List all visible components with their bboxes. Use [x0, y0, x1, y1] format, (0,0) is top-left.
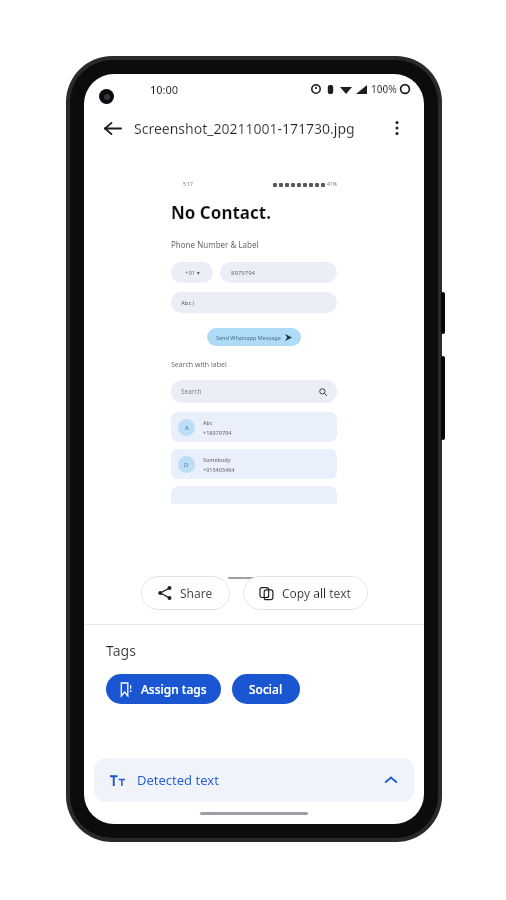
staticText: A	[185, 424, 189, 432]
staticText: Copy all text	[282, 585, 351, 601]
staticText: Abc	[203, 419, 213, 426]
staticText: 100%	[371, 82, 397, 96]
staticText: 41%	[327, 181, 337, 188]
button[interactable]: D	[171, 449, 337, 479]
button[interactable]: Detected text	[94, 758, 414, 802]
staticText: 10:00	[150, 82, 179, 97]
staticText: Abc|	[181, 299, 195, 307]
staticText: Tags	[106, 641, 136, 660]
staticText: +915405464	[203, 466, 235, 473]
staticText: Somebody	[203, 456, 231, 463]
button[interactable]: 8979794	[220, 262, 337, 283]
button[interactable]: Abc|	[171, 292, 337, 313]
button[interactable]: Search	[171, 380, 337, 403]
staticText: Search	[181, 387, 202, 396]
staticText: Phone Number & Label	[171, 239, 259, 250]
button[interactable]: Share	[141, 576, 230, 610]
staticText: Detected text	[137, 771, 219, 789]
staticText: No Contact.	[171, 201, 271, 224]
staticText: Social	[249, 681, 283, 697]
staticText: Send Whatsapp Message	[216, 334, 281, 341]
staticText: D	[184, 461, 189, 469]
staticText: +91 ▾	[185, 269, 200, 277]
staticText: Share	[180, 585, 213, 601]
button[interactable]: 5:17	[158, 174, 350, 584]
button[interactable]: Send Whatsapp Message	[207, 328, 301, 346]
button[interactable]: Copy all text	[243, 576, 368, 610]
staticText: 5:17	[183, 181, 193, 188]
button[interactable]: Back	[96, 112, 128, 144]
staticText: 8979794	[231, 269, 256, 277]
staticText: Assign tags	[141, 681, 207, 697]
button[interactable]: +91 ▾	[171, 262, 213, 283]
staticText: Search with label	[171, 360, 227, 370]
button[interactable]: Assign tags	[106, 674, 221, 704]
staticText: Screenshot_20211001-171730.jpg	[134, 119, 355, 138]
button[interactable]: More options	[382, 113, 412, 143]
staticText: +18979794	[203, 429, 232, 436]
button[interactable]: A	[171, 412, 337, 442]
button[interactable]: Social	[232, 674, 300, 704]
